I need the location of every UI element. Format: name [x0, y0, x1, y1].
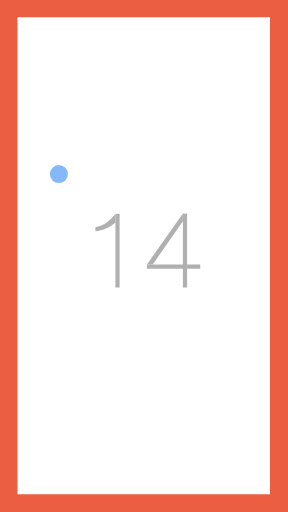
button[interactable]: Day 14 [94, 211, 202, 289]
button[interactable]: Event marker [50, 165, 68, 183]
